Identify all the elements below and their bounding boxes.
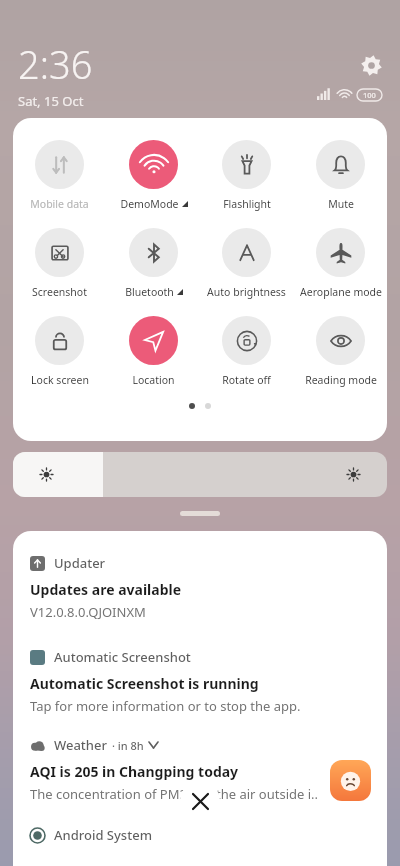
button[interactable]: Aeroplane mode [294,228,387,299]
staticText: AQI is 205 in Changping today [30,762,239,781]
staticText: Mute [328,197,354,211]
staticText: The concentration of PM2.5 in the air ou… [30,785,319,803]
button[interactable]: Settings [358,52,384,78]
button[interactable]: Flashlight [200,140,293,211]
button[interactable]: Auto brightness [200,228,293,299]
button[interactable]: Reading mode [294,316,387,387]
button[interactable]: Weather [13,736,387,803]
staticText: Weather [54,736,107,754]
staticText: Sat, 15 Oct [18,92,84,110]
staticText: · in 8h [112,738,144,753]
staticText: Reading mode [305,373,377,387]
staticText: 2:36 [18,38,93,90]
button[interactable]: Air quality [330,760,371,801]
button[interactable]: Automatic Screenshot [13,648,387,715]
staticText: V12.0.8.0.QJOINXM [30,603,146,621]
staticText: DemoMode [120,197,179,211]
button[interactable]: Screenshot [13,228,106,299]
staticText: Rotate off [222,373,271,387]
staticText: Mobile data [30,197,89,211]
button[interactable]: Brightness [13,452,387,497]
button[interactable]: Rotate off [200,316,293,387]
button[interactable]: Close [180,781,220,821]
staticText: Flashlight [223,197,271,211]
staticText: Android System [54,826,152,844]
staticText: 100 [363,90,376,100]
button[interactable]: Bluetooth [107,228,200,299]
button[interactable]: Location [107,316,200,387]
staticText: Location [132,373,175,387]
button[interactable]: Updater [30,554,387,572]
button[interactable]: Updater [13,554,387,621]
button[interactable]: Weather [30,736,387,754]
button[interactable]: Mute [294,140,387,211]
button[interactable]: Android System [13,826,387,844]
staticText: Tap for more information or to stop the … [30,697,301,715]
staticText: Updates are available [30,580,182,599]
staticText: Bluetooth [125,285,174,299]
button[interactable]: Automatic Screenshot [30,648,387,666]
button[interactable]: DemoMode [107,140,200,211]
button[interactable]: Lock screen [13,316,106,387]
staticText: Lock screen [31,373,89,387]
staticText: Automatic Screenshot is running [30,674,259,693]
button[interactable]: Mobile data [13,140,106,211]
button[interactable]: Android System [30,826,387,844]
staticText: Aeroplane mode [300,285,382,299]
staticText: Auto brightness [207,285,286,299]
staticText: Screenshot [32,285,87,299]
staticText: Automatic Screenshot [54,648,191,666]
staticText: Updater [54,554,106,572]
